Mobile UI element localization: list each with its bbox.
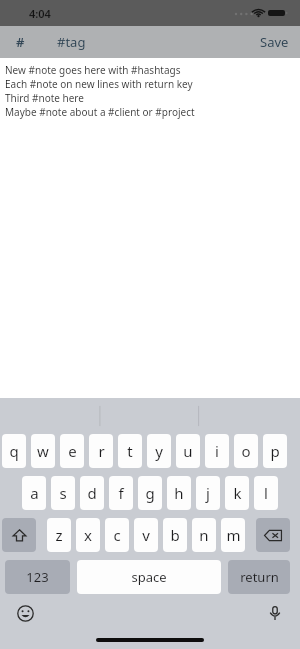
button[interactable]: p — [263, 434, 287, 468]
button[interactable]: o — [234, 434, 258, 468]
staticText: Maybe #note about a #client or #project — [5, 105, 195, 119]
button[interactable]: space — [77, 560, 221, 594]
staticText: Third #note here — [5, 91, 84, 105]
staticText: i — [215, 441, 219, 461]
button[interactable]: i — [205, 434, 229, 468]
button[interactable]: c — [105, 518, 129, 552]
button[interactable]: y — [147, 434, 171, 468]
staticText: # — [16, 33, 25, 51]
button[interactable]: s — [51, 476, 75, 510]
button[interactable]: a — [22, 476, 46, 510]
button[interactable]: l — [254, 476, 278, 510]
button[interactable]: r — [89, 434, 113, 468]
button[interactable]: # — [0, 26, 40, 58]
button[interactable]: g — [138, 476, 162, 510]
staticText: m — [226, 525, 241, 545]
button[interactable]: j — [196, 476, 220, 510]
button[interactable]: f — [109, 476, 133, 510]
button[interactable]: New #note goes here with #hashtags — [0, 58, 300, 398]
staticText: y — [155, 441, 163, 461]
staticText: q — [9, 441, 19, 461]
staticText: n — [199, 525, 209, 545]
staticText: o — [241, 441, 251, 461]
button[interactable]: w — [31, 434, 55, 468]
button[interactable]: return — [228, 560, 290, 594]
button[interactable]: b — [163, 518, 187, 552]
staticText: 4:04 — [29, 6, 51, 21]
staticText: a — [30, 483, 39, 503]
staticText: j — [206, 483, 210, 503]
staticText: t — [127, 441, 133, 461]
staticText: d — [87, 483, 97, 503]
staticText: x — [84, 525, 92, 545]
staticText: r — [98, 441, 105, 461]
button[interactable]: v — [134, 518, 158, 552]
staticText: e — [68, 441, 77, 461]
staticText: p — [270, 441, 280, 461]
staticText: g — [145, 483, 155, 503]
staticText: Each #note on new lines with return key — [5, 77, 193, 91]
button[interactable]: Shift — [2, 518, 36, 552]
staticText: k — [233, 483, 242, 503]
staticText: f — [118, 483, 124, 503]
button[interactable]: 123 — [5, 560, 70, 594]
staticText: u — [183, 441, 193, 461]
button[interactable]: q — [2, 434, 26, 468]
staticText: space — [131, 568, 167, 586]
button[interactable]: x — [76, 518, 100, 552]
button[interactable]: Backspace — [256, 518, 290, 552]
button[interactable]: z — [47, 518, 71, 552]
staticText: v — [142, 525, 150, 545]
staticText: return — [240, 568, 279, 586]
staticText: w — [37, 441, 49, 461]
staticText: #tag — [57, 33, 86, 51]
button[interactable]: #tag — [50, 26, 100, 58]
staticText: z — [55, 525, 63, 545]
button[interactable]: e — [60, 434, 84, 468]
staticText: b — [170, 525, 180, 545]
staticText: Save — [260, 33, 289, 51]
button[interactable]: t — [118, 434, 142, 468]
staticText: 123 — [26, 568, 49, 586]
staticText: h — [174, 483, 184, 503]
button[interactable]: n — [192, 518, 216, 552]
button[interactable]: m — [221, 518, 245, 552]
button[interactable]: u — [176, 434, 200, 468]
button[interactable]: h — [167, 476, 191, 510]
button[interactable]: Dictation — [264, 602, 286, 624]
staticText: l — [264, 483, 268, 503]
button[interactable]: Emoji — [14, 602, 36, 624]
staticText: c — [113, 525, 121, 545]
staticText: New #note goes here with #hashtags — [5, 63, 181, 77]
button[interactable]: Save — [248, 26, 300, 58]
button[interactable]: k — [225, 476, 249, 510]
staticText: s — [59, 483, 67, 503]
button[interactable]: d — [80, 476, 104, 510]
